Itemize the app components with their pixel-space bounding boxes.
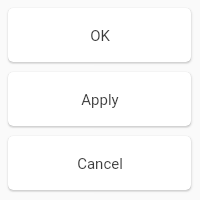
staticText: Apply [81, 91, 119, 109]
button[interactable]: OK [8, 8, 191, 62]
staticText: OK [90, 27, 110, 45]
staticText: Cancel [77, 155, 123, 173]
button[interactable]: Apply [8, 72, 191, 126]
button[interactable]: Cancel [8, 136, 191, 190]
